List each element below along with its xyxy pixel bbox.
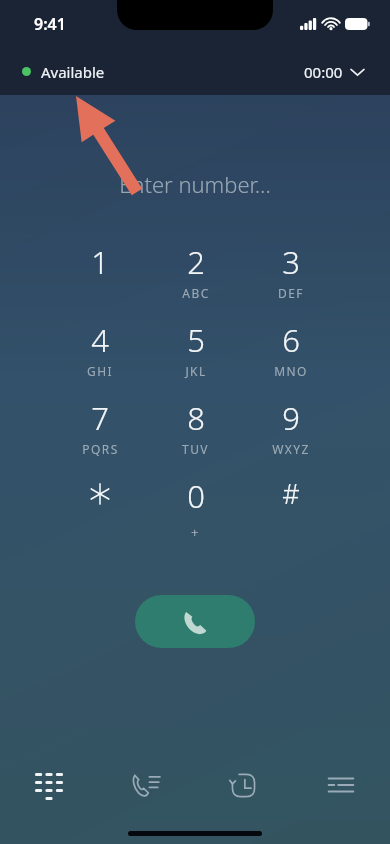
other: Expand xyxy=(351,68,364,76)
button[interactable]: 0 xyxy=(148,473,243,545)
staticText: 5 xyxy=(187,319,205,361)
button[interactable]: Contacts xyxy=(97,757,194,813)
staticText: 4 xyxy=(91,319,109,361)
button[interactable]: 8 xyxy=(148,395,243,467)
staticText: WXYZ xyxy=(272,441,310,457)
staticText: 0 xyxy=(187,475,205,517)
staticText: DEF xyxy=(278,285,304,301)
staticText: 7 xyxy=(91,397,109,439)
button[interactable]: More xyxy=(292,757,390,813)
button[interactable]: Call xyxy=(135,595,255,648)
staticText: Enter number... xyxy=(0,169,390,199)
staticText: 6 xyxy=(282,319,300,361)
button[interactable] xyxy=(52,473,148,545)
staticText: Available xyxy=(41,62,105,82)
button[interactable]: 2 xyxy=(148,239,243,311)
staticText: PQRS xyxy=(82,441,119,457)
button[interactable]: 6 xyxy=(243,317,338,389)
button[interactable]: Dialpad xyxy=(0,757,97,813)
staticText: 9 xyxy=(282,397,300,439)
staticText: 2 xyxy=(187,241,205,283)
button[interactable]: 7 xyxy=(52,395,148,467)
button[interactable]: 00:00 xyxy=(300,58,368,86)
button[interactable]: # xyxy=(243,473,338,545)
staticText: 00:00 xyxy=(304,62,343,82)
staticText: ABC xyxy=(182,285,210,301)
staticText: + xyxy=(191,523,200,541)
staticText: GHI xyxy=(87,363,113,379)
button[interactable]: Recents xyxy=(194,757,292,813)
staticText: # xyxy=(282,475,300,512)
staticText: MNO xyxy=(274,363,308,379)
button[interactable]: 1 xyxy=(52,239,148,311)
button[interactable]: 9 xyxy=(243,395,338,467)
button[interactable]: 5 xyxy=(148,317,243,389)
staticText: 8 xyxy=(187,397,205,439)
staticText: JKL xyxy=(185,363,207,379)
button[interactable]: 3 xyxy=(243,239,338,311)
button[interactable]: 4 xyxy=(52,317,148,389)
staticText: 1 xyxy=(91,241,109,283)
staticText: 9:41 xyxy=(34,13,66,35)
staticText: 3 xyxy=(282,241,300,283)
staticText: TUV xyxy=(182,441,209,457)
